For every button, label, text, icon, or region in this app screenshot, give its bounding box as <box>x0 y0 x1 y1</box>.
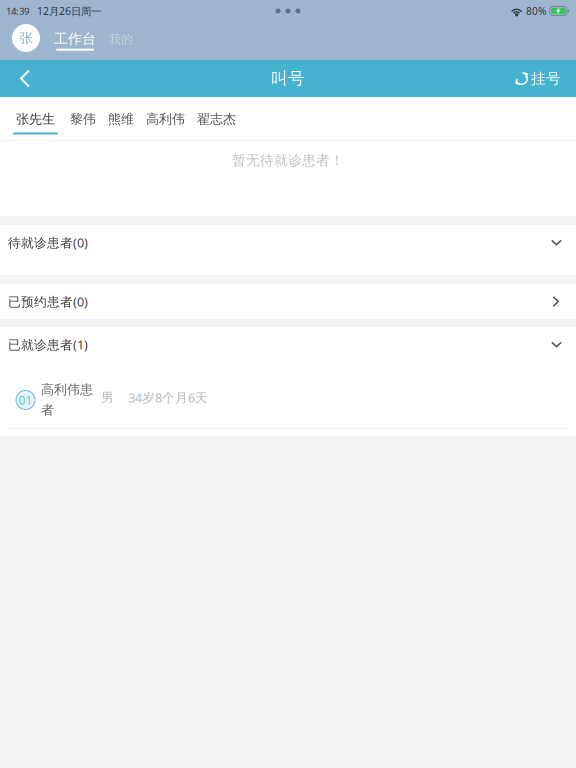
staticText: 黎伟 <box>70 111 96 127</box>
staticText: 12月26日周一 <box>37 4 101 18</box>
staticText: 已就诊患者(1) <box>8 336 88 353</box>
button[interactable]: 熊维 <box>106 97 136 134</box>
staticText: 熊维 <box>108 111 134 127</box>
button[interactable]: 黎伟 <box>68 97 98 134</box>
button[interactable]: 工作台 <box>54 22 96 51</box>
button[interactable]: 张先生 <box>11 97 60 134</box>
button[interactable]: 高利伟 <box>144 97 187 134</box>
staticText: 工作台 <box>54 30 96 48</box>
staticText: 翟志杰 <box>197 111 236 127</box>
button[interactable]: 待就诊患者(0) <box>0 225 576 275</box>
button[interactable]: 已预约患者(0) <box>0 284 576 319</box>
button[interactable]: Back <box>0 60 44 97</box>
button[interactable]: 01 <box>0 362 576 436</box>
staticText: 者 <box>41 402 54 418</box>
staticText: 叫号 <box>271 68 305 89</box>
button[interactable]: Account <box>12 24 40 52</box>
staticText: 高利伟 <box>146 111 185 127</box>
staticText: 待就诊患者(0) <box>8 234 88 251</box>
staticText: 80% <box>526 4 546 18</box>
staticText: 男 <box>101 389 114 405</box>
staticText: 34岁8个月6天 <box>128 389 208 406</box>
button[interactable]: 翟志杰 <box>195 97 238 134</box>
button[interactable]: 挂号 <box>503 60 576 97</box>
staticText: 高利伟患 <box>41 381 93 398</box>
button[interactable]: 已就诊患者(1) <box>0 327 576 362</box>
button[interactable]: 我的 <box>109 22 133 47</box>
staticText: 已预约患者(0) <box>8 293 88 310</box>
staticText: 14:39 <box>6 4 29 18</box>
staticText: 挂号 <box>531 69 561 88</box>
staticText: 张 <box>19 30 32 46</box>
staticText: 我的 <box>109 32 133 47</box>
staticText: 01 <box>18 392 32 408</box>
staticText: 张先生 <box>16 111 55 127</box>
staticText: 暂无待就诊患者！ <box>232 152 344 169</box>
